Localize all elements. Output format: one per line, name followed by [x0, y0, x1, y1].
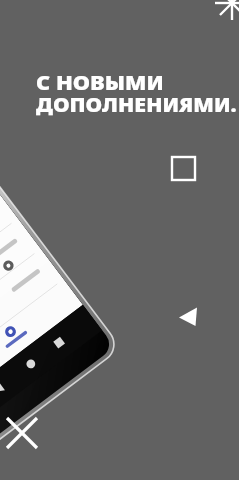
button[interactable]: Promo: С новыми дополнениями	[0, 0, 239, 480]
